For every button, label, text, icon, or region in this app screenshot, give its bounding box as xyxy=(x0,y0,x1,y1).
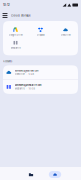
staticText: 10:12 xyxy=(3,3,10,7)
button[interactable]: Open navigation menu xyxy=(0,11,9,20)
staticText: Google Drive xyxy=(8,33,22,36)
staticText: Accounts xyxy=(3,60,12,63)
staticText: OneDrive · 5 GB xyxy=(14,73,33,75)
staticText: someone12@outlook.com xyxy=(14,69,38,72)
button[interactable]: someone12@mediafire.com xyxy=(3,80,78,94)
staticText: OneDrive xyxy=(60,33,70,36)
staticText: Dropbox xyxy=(36,33,44,36)
button[interactable]: someone12@outlook.com xyxy=(3,65,78,79)
staticText: Cloud storage xyxy=(11,14,31,17)
button[interactable]: Files xyxy=(19,170,43,178)
button[interactable]: Cloud xyxy=(43,170,67,178)
button[interactable]: MediaFire xyxy=(3,38,28,51)
staticText: MediaFire xyxy=(10,46,20,49)
button[interactable]: OneDrive xyxy=(53,25,78,38)
staticText: someone12@mediafire.com xyxy=(14,84,41,87)
staticText: MediaFire · 10 GB xyxy=(14,87,34,90)
button[interactable]: Google Drive xyxy=(3,25,28,38)
button[interactable]: Dropbox xyxy=(28,25,53,38)
